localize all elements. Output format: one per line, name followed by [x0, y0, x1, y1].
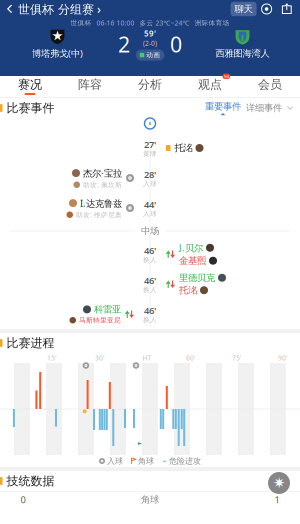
button[interactable]: 动画	[136, 49, 164, 61]
staticText: 角球	[141, 494, 159, 505]
staticText: 0	[20, 493, 25, 506]
button[interactable]: 46'	[0, 269, 300, 299]
staticText: ✷	[273, 475, 285, 491]
staticText: 托洺	[174, 142, 192, 154]
staticText: 托洺	[179, 284, 197, 296]
button[interactable]: I.达克鲁兹	[0, 193, 300, 223]
button[interactable]: 世俱杯 分组赛 ›	[0, 0, 101, 20]
staticText: 59'	[144, 28, 156, 39]
staticText: 46'	[144, 304, 156, 317]
staticText: J.贝尔	[179, 241, 203, 254]
staticText: 27'	[144, 138, 156, 151]
staticText: I.达克鲁兹	[80, 197, 122, 209]
button[interactable]: 分析	[120, 76, 180, 97]
staticText: 2	[118, 30, 130, 58]
staticText: 里德贝克	[179, 272, 215, 283]
staticText: (2-0)	[143, 39, 157, 47]
staticText: 博塔弗戈(中)	[32, 47, 83, 59]
staticText: 角球	[138, 456, 154, 466]
staticText: 聊天	[235, 3, 253, 15]
button[interactable]: 46'	[0, 239, 300, 269]
staticText: 动画	[146, 51, 160, 59]
button[interactable]: 聊天	[231, 2, 257, 16]
staticText: 危险进攻	[169, 456, 201, 466]
staticText: 会员	[258, 77, 282, 92]
staticText: 比赛事件	[6, 101, 54, 115]
button[interactable]: Live	[257, 2, 277, 16]
button[interactable]: 科雷亚	[0, 299, 300, 329]
staticText: 观点	[198, 77, 222, 92]
staticText: 科雷亚	[94, 304, 121, 315]
staticText: 换人	[143, 256, 157, 264]
staticText: 赛况	[18, 77, 42, 92]
staticText: 阵容	[78, 77, 102, 92]
button[interactable]: 27'	[0, 133, 300, 163]
staticText: 助攻: 维萨尼奥	[76, 210, 122, 219]
staticText: 60'	[186, 354, 196, 362]
staticText: ⌁	[162, 456, 167, 466]
staticText: 助攻: 佩坎斯	[83, 180, 122, 189]
staticText: 46'	[144, 274, 156, 287]
button[interactable]: Share	[277, 3, 300, 14]
staticText: 分析	[138, 77, 162, 92]
staticText: 技统数据	[6, 474, 54, 488]
staticText: 世俱杯 分组赛 ›	[18, 1, 101, 17]
staticText: 15'	[47, 354, 57, 362]
staticText: HT	[142, 354, 151, 362]
staticText: 入球	[143, 180, 157, 188]
staticText: 入球	[107, 456, 123, 466]
staticText: 28'	[144, 168, 156, 181]
staticText: 重要事件	[205, 101, 241, 112]
button[interactable]: 观点	[180, 76, 240, 97]
staticText: 1	[274, 493, 279, 506]
staticText: 黄牌	[143, 150, 157, 158]
staticText: 详细事件	[246, 102, 282, 114]
staticText: 换人	[143, 286, 157, 294]
staticText: 中场	[141, 225, 159, 237]
staticText: 换人	[143, 316, 157, 324]
staticText: 杰尔·宝拉	[83, 167, 122, 179]
staticText: 0	[170, 30, 182, 58]
button[interactable]: 会员	[240, 76, 300, 97]
staticText: 比赛进程	[6, 336, 54, 350]
staticText: 西雅图海湾人	[215, 48, 269, 59]
button[interactable]: Settings	[266, 470, 292, 496]
staticText: 30'	[95, 354, 105, 362]
staticText: 入球	[143, 210, 157, 218]
staticText: 世俱杯	[70, 19, 91, 27]
staticText: ★	[51, 28, 63, 43]
staticText: 06-16 10:00	[96, 19, 134, 27]
staticText: 44'	[144, 198, 156, 211]
button[interactable]: 杰尔·宝拉	[0, 163, 300, 193]
staticText: 46'	[144, 244, 156, 257]
staticText: 洲际体育场	[194, 19, 229, 27]
staticText: 75'	[232, 354, 242, 362]
staticText: hot	[224, 74, 229, 79]
button[interactable]: 赛况	[0, 76, 60, 97]
button[interactable]: 重要事件	[205, 101, 300, 115]
staticText: 90'	[278, 354, 288, 362]
staticText: 金基熙	[179, 255, 206, 266]
staticText: 马斯特里亚尼	[79, 316, 121, 324]
staticText: 多云 23℃~24℃	[139, 19, 189, 27]
button[interactable]: 阵容	[60, 76, 120, 97]
